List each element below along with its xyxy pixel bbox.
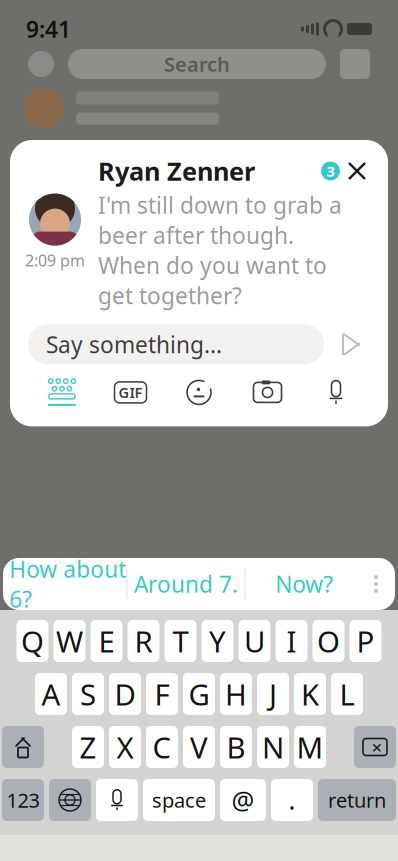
button[interactable]: W: [53, 620, 85, 662]
button[interactable]: K: [294, 673, 326, 715]
staticText: T: [172, 621, 188, 660]
staticText: return: [328, 787, 386, 813]
staticText: Y: [209, 621, 226, 660]
button[interactable]: A: [35, 673, 67, 715]
button[interactable]: Record audio: [306, 372, 366, 412]
button[interactable]: Close: [340, 154, 374, 188]
button[interactable]: J: [257, 673, 289, 715]
button[interactable]: G: [183, 673, 215, 715]
staticText: C: [152, 727, 171, 766]
staticText: B: [226, 727, 245, 766]
button[interactable]: GIF: [100, 372, 160, 412]
staticText: F: [154, 674, 169, 713]
button[interactable]: Send: [336, 327, 370, 361]
staticText: R: [134, 621, 152, 660]
button[interactable]: Dictate: [96, 779, 138, 821]
button[interactable]: More replies: [363, 558, 389, 610]
button[interactable]: U: [238, 620, 270, 662]
staticText: A: [41, 674, 60, 713]
staticText: Say something...: [46, 329, 222, 359]
staticText: G: [188, 674, 209, 713]
button[interactable]: S: [72, 673, 104, 715]
button[interactable]: Shift: [2, 726, 44, 768]
button[interactable]: space: [143, 779, 215, 821]
staticText: H: [225, 674, 247, 713]
staticText: L: [339, 674, 354, 713]
staticText: Search: [164, 51, 230, 77]
staticText: W: [56, 621, 83, 660]
button[interactable]: R: [127, 620, 159, 662]
button[interactable]: I: [275, 620, 307, 662]
staticText: I: [286, 621, 296, 660]
staticText: Ryan Zenner: [98, 154, 255, 188]
staticText: Around 7.: [134, 569, 238, 599]
staticText: S: [80, 674, 96, 713]
button[interactable]: F: [146, 673, 178, 715]
staticText: D: [114, 674, 135, 713]
button[interactable]: Z: [72, 726, 104, 768]
staticText: Now?: [275, 569, 333, 599]
button[interactable]: @: [220, 779, 266, 821]
button[interactable]: Next keyboard: [49, 779, 91, 821]
button[interactable]: T: [164, 620, 196, 662]
staticText: E: [98, 621, 114, 660]
button[interactable]: M: [294, 726, 326, 768]
staticText: M: [296, 727, 323, 766]
staticText: Z: [79, 727, 96, 766]
button[interactable]: X: [109, 726, 141, 768]
button[interactable]: Q: [16, 620, 48, 662]
staticText: J: [269, 674, 277, 713]
staticText: O: [317, 621, 340, 660]
staticText: 9:41: [26, 14, 71, 44]
button[interactable]: C: [146, 726, 178, 768]
staticText: GIF: [118, 383, 142, 402]
staticText: X: [116, 727, 133, 766]
staticText: @: [231, 783, 254, 817]
button[interactable]: V: [183, 726, 215, 768]
staticText: I'm still down to grab a beer after thou…: [98, 190, 342, 310]
button[interactable]: Stickers: [169, 372, 229, 412]
button[interactable]: Camera: [237, 372, 297, 412]
button[interactable]: N: [257, 726, 289, 768]
staticText: Q: [21, 621, 44, 660]
staticText: .: [288, 783, 295, 817]
button[interactable]: Y: [201, 620, 233, 662]
staticText: V: [190, 727, 208, 766]
staticText: K: [301, 674, 319, 713]
staticText: 3: [326, 161, 334, 181]
staticText: 2:09 pm: [25, 250, 85, 271]
button[interactable]: P: [349, 620, 381, 662]
staticText: U: [244, 621, 265, 660]
button[interactable]: Delete: [354, 726, 396, 768]
button[interactable]: D: [109, 673, 141, 715]
staticText: How about 6?: [9, 554, 126, 614]
staticText: N: [262, 727, 284, 766]
staticText: 123: [6, 787, 39, 813]
button[interactable]: .: [271, 779, 313, 821]
button[interactable]: Keyboard: [32, 372, 92, 412]
button[interactable]: Around 7.: [127, 558, 245, 610]
button[interactable]: return: [318, 779, 396, 821]
button[interactable]: B: [220, 726, 252, 768]
staticText: space: [152, 787, 206, 813]
button[interactable]: E: [90, 620, 122, 662]
button[interactable]: L: [331, 673, 363, 715]
button[interactable]: O: [312, 620, 344, 662]
staticText: P: [356, 621, 374, 660]
button[interactable]: H: [220, 673, 252, 715]
staticText: ×: [371, 735, 382, 759]
button[interactable]: How about 6?: [9, 558, 126, 610]
button[interactable]: 123: [2, 779, 44, 821]
button[interactable]: Now?: [246, 558, 363, 610]
